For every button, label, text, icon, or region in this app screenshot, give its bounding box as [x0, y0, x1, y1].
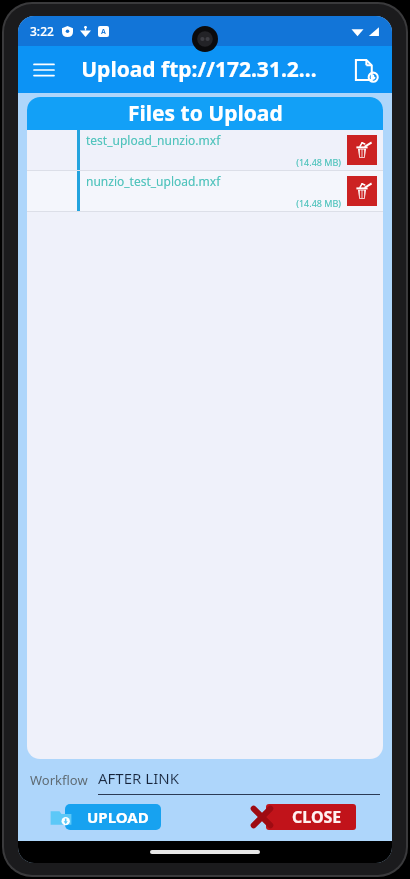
staticText: AFTER LINK	[98, 768, 179, 788]
staticText: Upload ftp://172.31.2…	[81, 55, 317, 84]
staticText: test_upload_nunzio.mxf	[86, 132, 221, 148]
staticText: (14.48 MB)	[86, 156, 341, 168]
button[interactable]: AFTER LINK	[98, 765, 380, 795]
button[interactable]: CLOSE	[248, 803, 356, 831]
staticText: UPLOAD	[87, 807, 149, 827]
staticText: Workflow	[30, 771, 88, 789]
staticText: (14.48 MB)	[86, 197, 341, 209]
staticText: nunzio_test_upload.mxf	[86, 173, 221, 189]
button[interactable]: UPLOAD	[48, 803, 161, 831]
button[interactable]: test_upload_nunzio.mxf	[27, 130, 383, 170]
button[interactable]: Delete test_upload_nunzio.mxf	[347, 135, 377, 165]
button[interactable]: nunzio_test_upload.mxf	[27, 171, 383, 211]
staticText: A	[101, 27, 106, 37]
button[interactable]: Delete nunzio_test_upload.mxf	[347, 176, 377, 206]
staticText: CLOSE	[292, 806, 342, 828]
staticText: 3:22	[30, 23, 54, 39]
button[interactable]: Open navigation menu	[24, 50, 64, 90]
staticText: Files to Upload	[128, 99, 283, 128]
button[interactable]: Add file	[346, 50, 386, 90]
